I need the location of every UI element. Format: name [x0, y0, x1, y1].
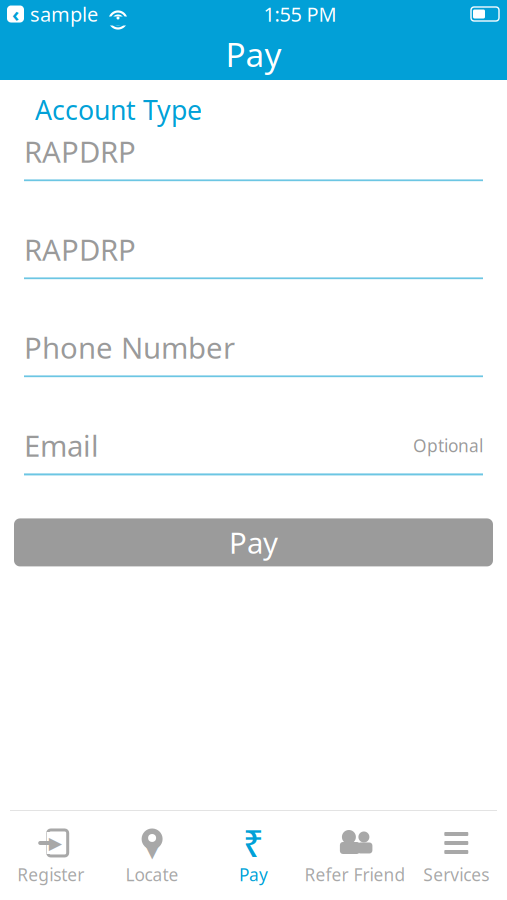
- staticText: RAPDRP: [24, 230, 136, 269]
- button[interactable]: Services: [406, 821, 507, 894]
- staticText: Pay: [225, 32, 281, 76]
- staticText: Email: [24, 426, 99, 465]
- staticText: Account Type: [35, 92, 202, 127]
- button[interactable]: ▶: [0, 821, 101, 894]
- staticText: Pay: [229, 523, 278, 562]
- button[interactable]: RAPDRP: [0, 229, 507, 279]
- staticText: Register: [17, 863, 84, 886]
- staticText: ₹: [243, 819, 264, 867]
- button[interactable]: Refer Friend: [304, 821, 406, 894]
- staticText: Pay: [239, 863, 268, 886]
- staticText: Phone Number: [24, 328, 235, 367]
- staticText: ▶: [49, 833, 62, 853]
- button[interactable]: Phone Number: [0, 327, 507, 377]
- staticText: RAPDRP: [24, 132, 136, 171]
- staticText: 1:55 PM: [263, 1, 336, 27]
- staticText: Optional: [413, 434, 483, 457]
- staticText: ▼: [145, 839, 160, 861]
- staticText: Locate: [126, 863, 179, 886]
- staticText: ‹: [12, 1, 19, 27]
- staticText: Refer Friend: [304, 863, 405, 886]
- staticText: Services: [423, 863, 489, 886]
- button[interactable]: Pay: [14, 518, 493, 566]
- button[interactable]: RAPDRP: [0, 131, 507, 181]
- button[interactable]: ₹: [203, 821, 304, 894]
- staticText: sample: [30, 1, 98, 27]
- button[interactable]: ▼: [101, 821, 203, 894]
- button[interactable]: Email: [0, 425, 507, 475]
